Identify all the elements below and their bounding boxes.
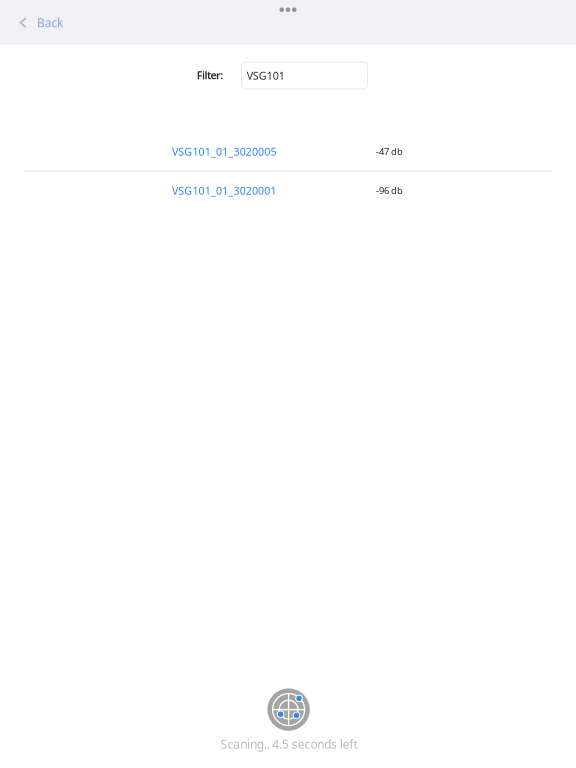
button[interactable]: VSG101 [241,62,367,89]
button[interactable]: Back [0,7,77,38]
staticText: Scaning.. 4.5 seconds left [220,736,357,752]
staticText: -47 db [376,145,403,158]
staticText: Back [37,15,63,31]
staticText: -96 db [376,184,403,197]
staticText: VSG101_01_3020005 [172,144,276,159]
button[interactable]: VSG101_01_3020001 [0,171,576,209]
staticText: Filter: [197,68,223,82]
staticText: VSG101_01_3020001 [172,183,276,198]
staticText: VSG101 [247,68,285,83]
button[interactable]: VSG101_01_3020005 [0,132,576,170]
